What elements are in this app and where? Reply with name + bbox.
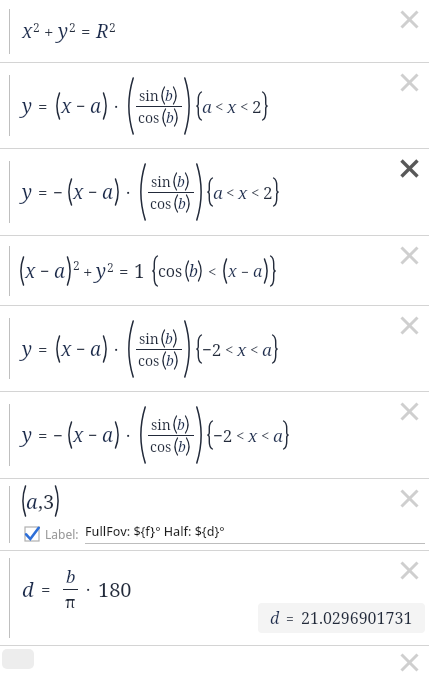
staticText: a [102, 179, 114, 205]
staticText: < [215, 96, 224, 116]
staticText: + [44, 20, 54, 43]
staticText: · [126, 424, 131, 447]
button[interactable]: Delete expression [392, 308, 426, 342]
button[interactable]: d [270, 607, 413, 629]
staticText: b [165, 86, 173, 105]
staticText: y [22, 336, 33, 362]
staticText: = [41, 578, 51, 601]
staticText: · [86, 578, 91, 601]
staticText: x [73, 179, 84, 205]
staticText: − [88, 181, 98, 203]
staticText: a [202, 95, 212, 118]
button[interactable]: y [0, 63, 429, 148]
staticText: = [38, 181, 48, 204]
button[interactable]: Toggle label [25, 527, 39, 541]
staticText: x [228, 260, 237, 282]
button[interactable]: Delete expression [392, 647, 426, 677]
staticText: Label: [45, 526, 79, 542]
staticText: sin [139, 86, 159, 105]
staticText: − [88, 424, 98, 446]
button[interactable]: d [0, 551, 429, 645]
staticText: a [90, 93, 102, 119]
button[interactable]: x [0, 236, 429, 305]
staticText: 2 [69, 19, 76, 35]
staticText: 2 [109, 19, 116, 35]
staticText: − [53, 181, 63, 204]
staticText: b [166, 108, 174, 127]
button[interactable]: Delete expression [392, 2, 426, 36]
staticText: , [38, 488, 43, 515]
staticText: b [66, 565, 76, 588]
staticText: + [83, 260, 93, 283]
staticText: b [165, 329, 173, 348]
staticText: x [238, 181, 248, 204]
staticText: y [96, 258, 107, 284]
staticText: < [251, 182, 260, 202]
staticText: b [166, 351, 174, 370]
staticText: 2 [33, 19, 40, 35]
button[interactable]: Delete expression [392, 553, 426, 587]
staticText: = [119, 260, 129, 283]
staticText: −2 [213, 424, 233, 447]
button[interactable]: Delete expression [392, 394, 426, 428]
staticText: 3 [43, 488, 55, 515]
staticText: < [236, 425, 245, 445]
staticText: a [273, 424, 283, 447]
staticText: x [22, 18, 33, 44]
staticText: sin [151, 172, 171, 191]
staticText: 2 [263, 181, 273, 204]
staticText: a [213, 181, 223, 204]
button[interactable]: Delete expression [392, 481, 426, 515]
staticText: x [237, 338, 247, 361]
button[interactable]: Delete expression [392, 65, 426, 99]
staticText: a [90, 336, 102, 362]
staticText: x [25, 258, 36, 284]
staticText: − [76, 338, 86, 360]
staticText: a [26, 488, 38, 515]
button[interactable]: y [0, 392, 429, 478]
staticText: 2 [73, 257, 80, 273]
staticText: cos [158, 260, 183, 282]
staticText: − [241, 262, 249, 281]
staticText: x [248, 424, 258, 447]
staticText: − [76, 95, 86, 117]
staticText: x [227, 95, 237, 118]
staticText: R [96, 18, 109, 44]
staticText: = [81, 20, 91, 43]
staticText: x [73, 422, 84, 448]
button[interactable]: y [0, 306, 429, 391]
button[interactable]: Delete expression [0, 646, 429, 677]
staticText: 21.0296901731 [301, 607, 413, 629]
staticText: sin [139, 329, 159, 348]
staticText: a [102, 422, 114, 448]
staticText: cos [150, 194, 172, 213]
staticText: b [178, 437, 186, 456]
staticText: x [61, 336, 72, 362]
button[interactable]: a [0, 479, 429, 550]
staticText: 1 [134, 258, 145, 284]
button[interactable]: Delete expression [392, 238, 426, 272]
staticText: b [177, 415, 185, 434]
staticText: b [178, 194, 186, 213]
staticText: y [22, 179, 33, 205]
staticText: 180 [98, 576, 132, 603]
staticText: b [189, 260, 198, 282]
staticText: = [286, 609, 294, 628]
staticText: < [226, 182, 235, 202]
staticText: = [38, 338, 48, 361]
staticText: a [54, 258, 66, 284]
staticText: a [262, 338, 272, 361]
button[interactable]: y [0, 149, 429, 235]
staticText: · [114, 338, 119, 361]
staticText: · [114, 95, 119, 118]
staticText: cos [138, 108, 160, 127]
staticText: cos [150, 437, 172, 456]
button[interactable]: Delete expression [392, 151, 426, 185]
staticText: d [22, 576, 34, 603]
staticText: < [208, 261, 217, 281]
staticText: < [240, 96, 249, 116]
staticText: − [53, 424, 63, 447]
staticText: x [61, 93, 72, 119]
button[interactable]: x [0, 0, 429, 62]
staticText: b [177, 172, 185, 191]
